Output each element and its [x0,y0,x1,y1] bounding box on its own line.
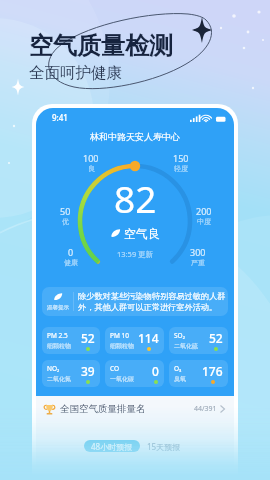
staticText: 52 [81,330,95,346]
staticText: 82 [114,173,157,223]
staticText: 0 [68,246,74,258]
staticText: 50 [60,205,71,217]
staticText: 严重 [191,258,205,267]
staticText: 良 [88,164,95,173]
staticText: PM 2.5 [47,331,68,340]
staticText: 15天预报 [147,441,181,452]
button[interactable]: 15天预报 [146,440,182,452]
button[interactable]: CO [105,360,164,387]
staticText: 优 [62,217,69,226]
staticText: 空气质量检测 [29,31,173,61]
staticText: 114 [138,330,159,346]
staticText: 13:59 更新 [117,249,154,259]
button[interactable]: 温馨提示 [42,287,228,316]
staticText: 9:41 [52,112,68,123]
staticText: 176 [202,363,223,379]
staticText: 0 [152,363,159,379]
staticText: CO [110,364,120,373]
staticText: 48小时预报 [91,441,133,452]
staticText: O₃ [174,364,182,373]
staticText: 轻度 [174,164,188,173]
button[interactable]: SO₂ [169,327,228,354]
button[interactable]: PM 2.5 [42,327,100,354]
staticText: 健康 [64,258,78,267]
staticText: 细颗粒物 [47,342,71,350]
staticText: 臭氧 [174,375,186,383]
staticText: 林和中路天安人寿中心 [90,131,180,142]
staticText: 一氧化碳 [110,375,134,383]
staticText: NO₂ [47,364,60,373]
staticText: SO₂ [174,331,185,340]
staticText: 二氧化硫 [174,342,198,350]
staticText: 全面呵护健康 [29,63,122,83]
other: 全国排名 [44,404,55,415]
staticText: 52 [209,330,223,346]
staticText: 100 [83,152,99,164]
staticText: 全国空气质量排量名 [60,403,146,415]
staticText: 除少数对某些污染物特别容易过敏的人群外，其他人群可以正常进行室外活动。 [78,291,227,313]
button[interactable]: 全国排名 [44,396,225,422]
button[interactable]: PM 10 [105,327,164,354]
staticText: 39 [81,363,95,379]
staticText: 200 [196,205,212,217]
staticText: 细颗粒物 [110,342,134,350]
staticText: 空气良 [124,226,160,241]
staticText: PM 10 [110,331,129,340]
staticText: 温馨提示 [47,304,69,311]
button[interactable]: NO₂ [42,360,100,387]
staticText: 300 [190,246,206,258]
staticText: 44/391 [194,404,217,414]
button[interactable]: O₃ [169,360,228,387]
staticText: 150 [173,152,189,164]
button[interactable]: 48小时预报 [84,440,140,452]
staticText: 二氧化氮 [47,375,71,383]
staticText: 中度 [197,217,211,226]
